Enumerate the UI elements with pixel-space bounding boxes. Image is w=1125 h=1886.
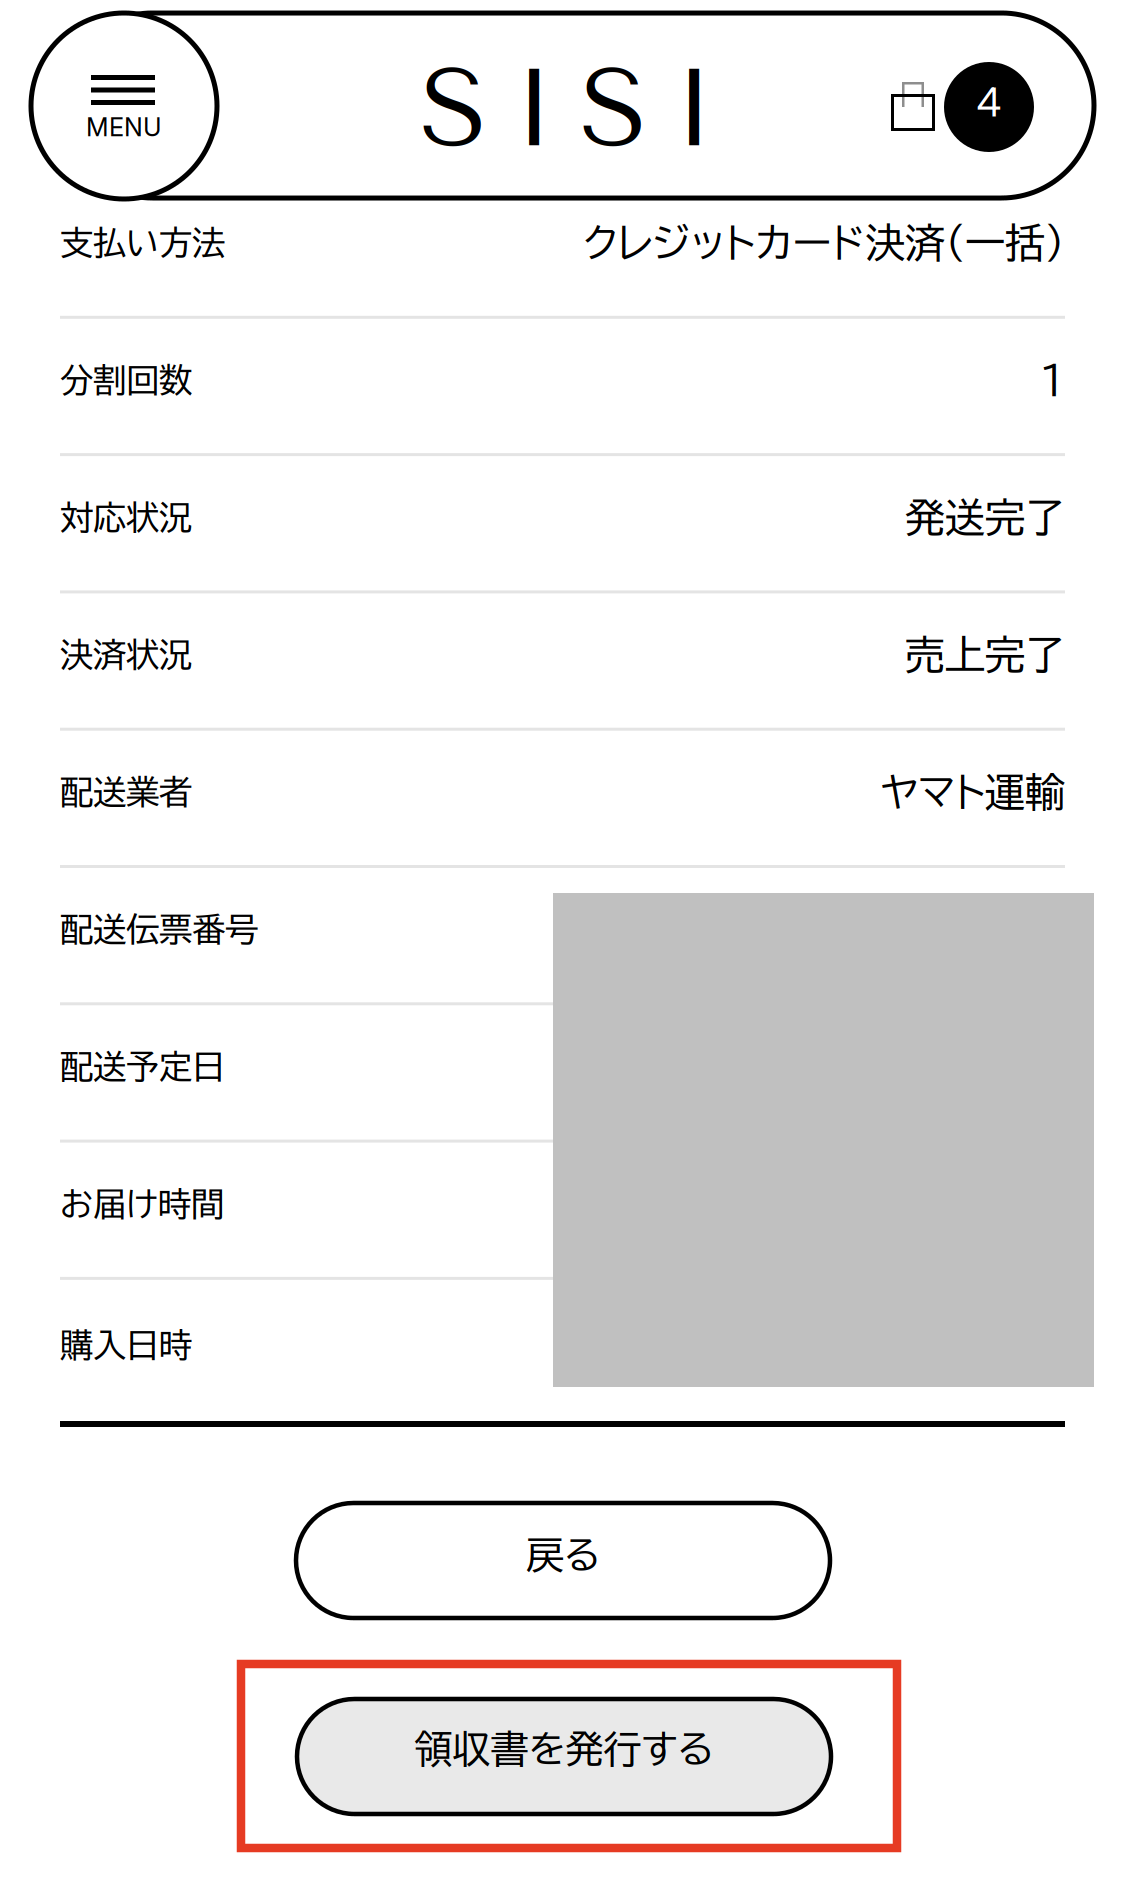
button[interactable]: 戻る: [296, 1503, 830, 1618]
staticText: 支払い方法: [60, 226, 225, 259]
staticText: お届け時間: [60, 1187, 224, 1220]
staticText: 購入日時: [60, 1328, 192, 1361]
staticText: クレジットカード決済（一括）: [583, 223, 1065, 263]
staticText: 領収書を発行する: [414, 1729, 713, 1767]
staticText: 配送伝票番号: [60, 912, 258, 946]
staticText: 戻る: [526, 1535, 600, 1573]
staticText: MENU: [86, 112, 162, 142]
button[interactable]: Cart, 4 items: [891, 62, 1034, 152]
staticText: 決済状況: [60, 638, 192, 671]
staticText: 配送業者: [60, 775, 192, 808]
staticText: 配送予定日: [60, 1050, 225, 1083]
staticText: ヤマト運輸: [881, 772, 1065, 812]
button[interactable]: Menu: [31, 13, 217, 199]
staticText: 1: [1040, 360, 1065, 400]
staticText: 発送完了: [905, 497, 1065, 537]
staticText: 分割回数: [60, 363, 192, 397]
staticText: 売上完了: [905, 635, 1065, 675]
button[interactable]: 領収書を発行する: [297, 1699, 831, 1814]
staticText: SISI: [419, 44, 716, 173]
staticText: 4: [976, 78, 1001, 126]
staticText: 対応状況: [60, 501, 192, 534]
